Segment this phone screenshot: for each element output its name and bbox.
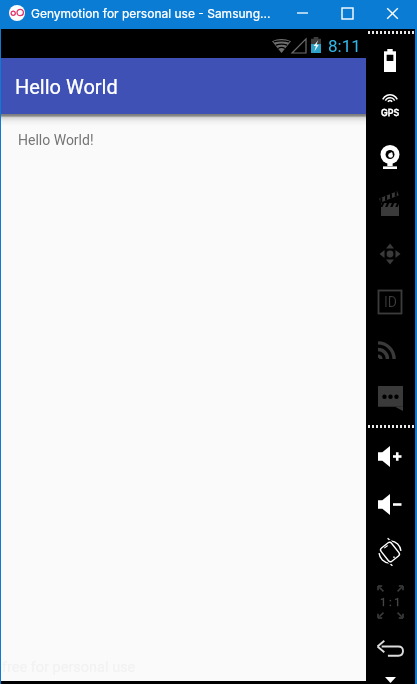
button[interactable]: Identifiers [378,290,402,314]
staticText: Genymotion for personal use - Samsung... [31,6,271,21]
button[interactable]: Maximize [325,0,370,29]
button[interactable]: Network [378,338,400,359]
staticText: GPS [381,107,400,118]
button[interactable]: Back [377,641,403,657]
button[interactable]: Battery [382,49,398,72]
button[interactable]: Camera [378,145,402,169]
button[interactable]: More [385,677,396,683]
button[interactable]: Messages [378,386,403,411]
button[interactable]: Minimize [280,0,325,29]
button[interactable]: Screen record [381,193,399,216]
staticText: Hello World! [18,132,94,148]
staticText: Hello World [15,75,118,98]
button[interactable]: Actual size [377,585,404,619]
button[interactable]: Volume up [378,446,404,467]
button[interactable]: D-pad [378,242,402,266]
button[interactable]: Close [370,0,415,29]
staticText: 8:11 [328,36,361,56]
staticText: ID [384,294,397,310]
button[interactable]: Volume down [378,494,404,515]
staticText: 1 : 1 [380,596,401,609]
button[interactable]: GPS [377,99,403,118]
button[interactable]: Rotate [378,540,402,564]
button[interactable]: Hello World [1,58,366,114]
